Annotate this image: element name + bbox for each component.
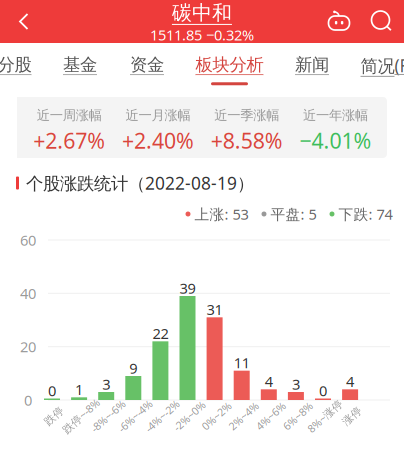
staticText: 39 — [179, 278, 195, 298]
staticText: 0 — [24, 390, 32, 410]
button[interactable]: 新闻 — [293, 43, 330, 92]
button[interactable]: 基金 — [61, 43, 98, 92]
staticText: 碳中和 — [172, 0, 232, 25]
staticText: 1 — [75, 380, 83, 399]
staticText: 4 — [346, 372, 354, 391]
staticText: 成分股 — [0, 54, 31, 75]
staticText: 跌停~-8% — [58, 409, 104, 423]
staticText: 资金 — [130, 54, 164, 75]
button[interactable]: 成分股 — [0, 43, 31, 92]
staticText: 近一周涨幅 — [37, 107, 102, 123]
staticText: −4.01% — [299, 126, 371, 155]
staticText: 6%~8% — [280, 409, 316, 423]
staticText: 31 — [207, 300, 223, 319]
staticText: 4 — [265, 372, 273, 391]
staticText: 上涨: 53 — [194, 204, 248, 224]
staticText: 涨停 — [341, 409, 363, 422]
staticText: 下跌: 74 — [338, 204, 392, 224]
staticText: 8%~涨停 — [303, 409, 346, 423]
staticText: 0 — [48, 381, 56, 400]
staticText: 4%~6% — [253, 409, 289, 423]
staticText: 20 — [20, 337, 36, 356]
staticText: -6%~-4% — [114, 409, 156, 423]
staticText: +2.40% — [122, 126, 194, 155]
staticText: -4%~-2% — [141, 409, 183, 423]
staticText: 3 — [292, 374, 300, 394]
staticText: 60 — [20, 230, 36, 250]
staticText: -2%~0% — [170, 409, 209, 423]
staticText: 跌停 — [43, 409, 65, 422]
staticText: 11 — [234, 353, 250, 372]
staticText: 近一年涨幅 — [303, 107, 368, 123]
staticText: 9 — [129, 358, 137, 378]
button[interactable]: 智能助手 — [320, 0, 360, 43]
staticText: 近一月涨幅 — [126, 107, 191, 123]
staticText: -8%~-6% — [87, 409, 129, 423]
staticText: 3 — [102, 374, 110, 394]
button[interactable]: 搜索 — [360, 0, 404, 43]
staticText: 40 — [20, 284, 36, 303]
button[interactable]: 资金 — [128, 43, 165, 92]
staticText: +2.67% — [33, 126, 105, 155]
staticText: 个股涨跌统计（2022-08-19） — [26, 171, 254, 194]
staticText: +8.58% — [211, 126, 283, 155]
staticText: 1511.85 −0.32% — [150, 25, 254, 44]
staticText: 22 — [152, 324, 168, 343]
staticText: 简况(F10) — [360, 54, 404, 77]
staticText: 平盘: 5 — [270, 204, 316, 224]
button[interactable]: 板块分析 — [195, 43, 263, 92]
staticText: 新闻 — [295, 54, 329, 75]
staticText: 基金 — [63, 54, 97, 75]
button[interactable]: 简况(F10) — [360, 43, 404, 92]
staticText: 2%~4% — [226, 409, 262, 423]
button[interactable]: 返回 — [0, 0, 48, 43]
staticText: 0%~2% — [199, 409, 235, 423]
staticText: 板块分析 — [195, 54, 263, 75]
staticText: 0 — [319, 381, 327, 400]
staticText: 近一季涨幅 — [214, 107, 279, 123]
